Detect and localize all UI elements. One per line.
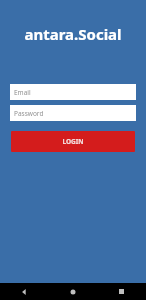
button[interactable]: Password: [10, 105, 136, 121]
button[interactable]: Home: [48, 283, 97, 300]
button[interactable]: Back: [0, 283, 48, 300]
staticText: Email: [14, 88, 31, 97]
button[interactable]: Email: [10, 84, 136, 100]
staticText: antara.Social: [24, 24, 122, 44]
button[interactable]: Recent apps: [97, 283, 146, 300]
button[interactable]: LOGIN: [11, 131, 135, 152]
staticText: Password: [14, 109, 44, 118]
staticText: LOGIN: [62, 137, 84, 146]
